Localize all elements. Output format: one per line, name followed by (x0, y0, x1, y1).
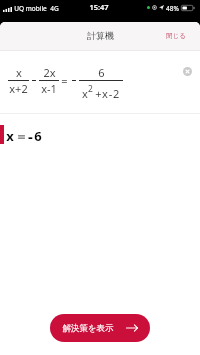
staticText: 48% (166, 4, 179, 13)
staticText: 閉じる (166, 32, 186, 40)
staticText: 6 (98, 65, 105, 80)
staticText: +x-2 (95, 86, 120, 101)
staticText: x-1 (41, 81, 57, 96)
staticText: 4G (50, 4, 59, 13)
button[interactable]: 閉じる (152, 26, 200, 46)
staticText: - (28, 126, 33, 146)
staticText: x+2 (9, 81, 28, 96)
staticText: 2 (88, 83, 93, 95)
staticText: = (61, 73, 68, 88)
staticText: x (16, 65, 22, 80)
staticText: 計算機 (87, 30, 114, 41)
staticText: 15:47 (89, 2, 109, 12)
staticText: x (6, 127, 14, 145)
staticText: 6 (34, 127, 42, 145)
staticText: 2x (43, 65, 56, 80)
staticText: UQ mobile (14, 4, 47, 13)
staticText: x (82, 86, 88, 101)
button[interactable]: Clear (182, 66, 193, 77)
button[interactable]: 解決策を表示 (50, 314, 150, 342)
staticText: = (17, 127, 26, 146)
staticText: 解決策を表示 (62, 323, 114, 334)
